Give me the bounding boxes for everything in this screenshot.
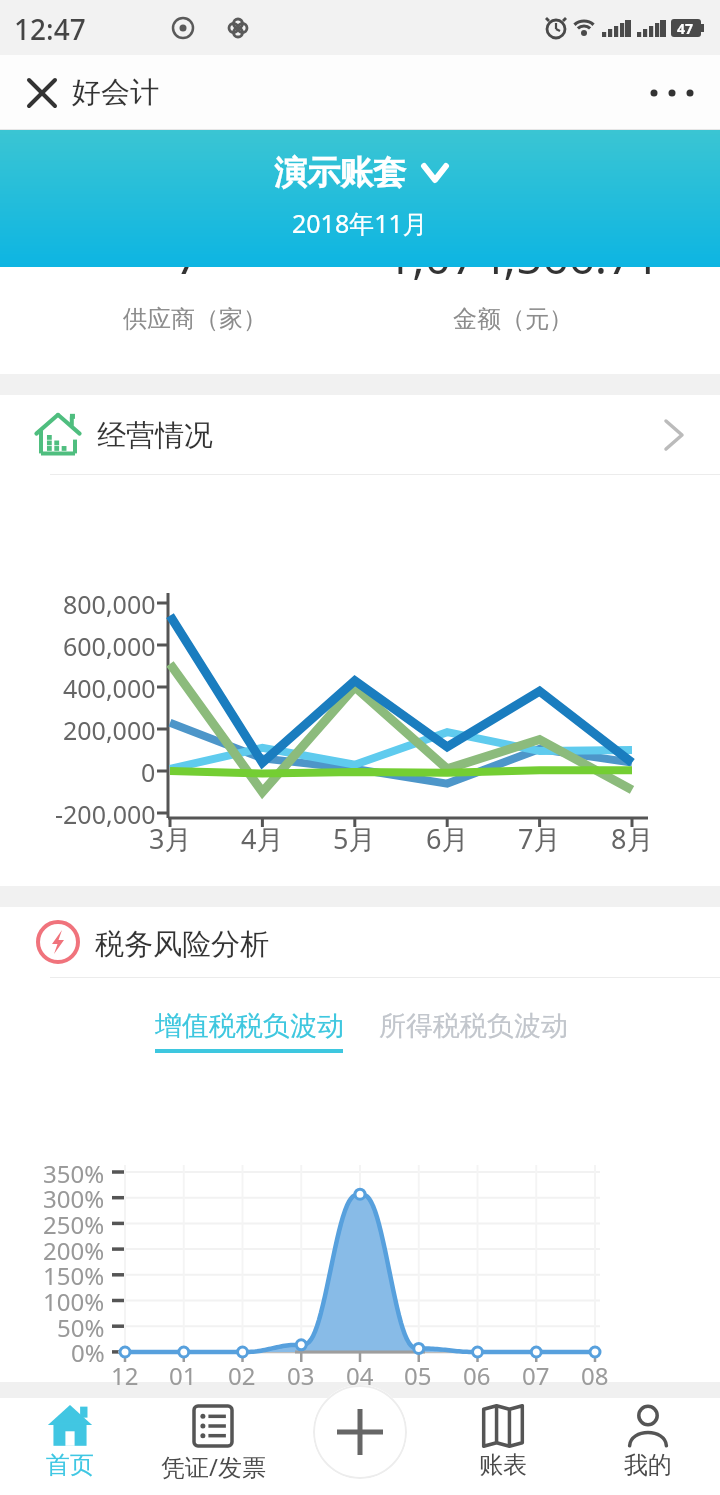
staticText: 47: [677, 19, 694, 38]
staticText: 0: [141, 755, 156, 787]
staticText: 账表: [479, 1450, 527, 1480]
staticText: 税务风险分析: [95, 926, 269, 963]
button[interactable]: 演示账套: [274, 152, 446, 194]
staticText: 凭证/发票: [161, 1450, 266, 1483]
staticText: 2018年11月: [292, 206, 428, 240]
button[interactable]: 所得税税负波动: [367, 1005, 579, 1047]
staticText: 演示账套: [274, 152, 406, 194]
staticText: 400,000: [63, 671, 156, 703]
staticText: 我的: [624, 1450, 672, 1480]
staticText: 7: [175, 267, 202, 288]
staticText: 经营情况: [97, 417, 213, 454]
staticText: 50%: [57, 1311, 105, 1341]
staticText: 12: [111, 1359, 139, 1389]
staticText: 金额（元）: [453, 304, 573, 334]
staticText: 12:47: [14, 10, 86, 48]
staticText: 0%: [71, 1336, 105, 1366]
staticText: 200%: [43, 1234, 105, 1264]
button[interactable]: [313, 1385, 407, 1479]
staticText: 5月: [333, 820, 376, 854]
staticText: 06: [463, 1359, 491, 1389]
staticText: 8月: [611, 820, 654, 854]
button[interactable]: 我的: [578, 1404, 718, 1480]
button[interactable]: [22, 73, 62, 113]
staticText: 3月: [149, 820, 192, 854]
button[interactable]: 首页: [0, 1404, 140, 1480]
staticText: 04: [346, 1359, 374, 1389]
staticText: 07: [522, 1359, 550, 1389]
button[interactable]: 增值税税负波动: [143, 1005, 355, 1047]
staticText: 100%: [43, 1285, 105, 1315]
staticText: 6月: [426, 820, 469, 854]
button[interactable]: 经营情况: [0, 395, 720, 475]
staticText: 7月: [518, 820, 561, 854]
staticText: 03: [287, 1359, 315, 1389]
staticText: 02: [228, 1359, 256, 1389]
staticText: 05: [404, 1359, 432, 1389]
staticText: 4月: [241, 820, 284, 854]
staticText: 150%: [43, 1259, 105, 1289]
button[interactable]: 账表: [433, 1404, 573, 1480]
staticText: 300%: [43, 1182, 105, 1212]
staticText: 首页: [46, 1450, 94, 1480]
staticText: 增值税税负波动: [155, 1009, 344, 1043]
staticText: 01: [169, 1359, 197, 1389]
button[interactable]: [648, 69, 696, 117]
staticText: -200,000: [55, 797, 156, 829]
staticText: 08: [581, 1359, 609, 1389]
staticText: 所得税税负波动: [379, 1009, 568, 1043]
staticText: 200,000: [63, 713, 156, 745]
staticText: 好会计: [72, 74, 159, 111]
button[interactable]: 凭证/发票: [143, 1404, 283, 1483]
staticText: 600,000: [63, 629, 156, 661]
staticText: 1,074,566.71: [386, 267, 660, 288]
staticText: 250%: [43, 1208, 105, 1238]
staticText: 供应商（家）: [123, 304, 267, 334]
staticText: 350%: [43, 1157, 105, 1187]
staticText: 800,000: [63, 587, 156, 619]
